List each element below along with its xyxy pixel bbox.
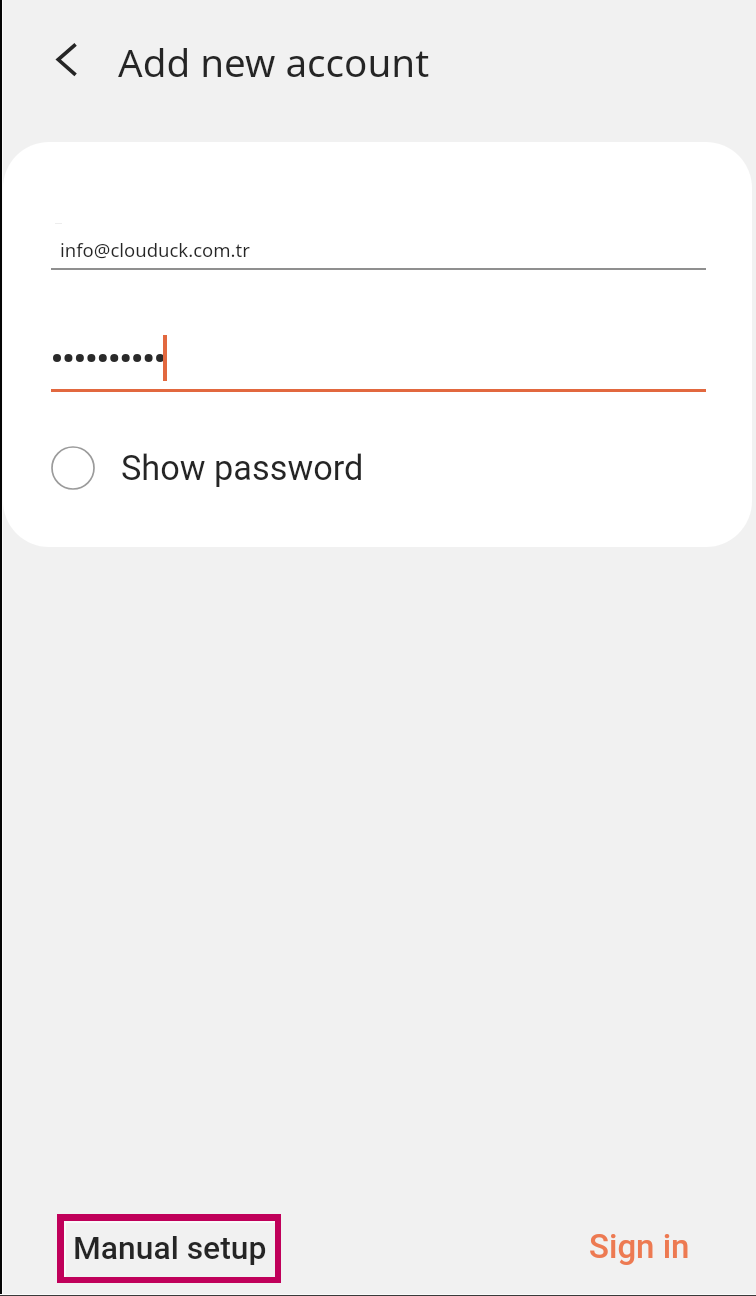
button[interactable]: info@clouduck.com.tr [51,212,706,270]
button[interactable]: Show password [38,433,364,503]
staticText: info@clouduck.com.tr [60,237,250,262]
button[interactable] [51,334,706,392]
staticText: Show password [121,448,364,488]
staticText: Sign in [589,1227,690,1266]
button[interactable]: Sign in [562,1212,717,1280]
button[interactable]: Back [28,21,106,99]
staticText: Manual setup [73,1229,267,1266]
button[interactable]: Manual setup [57,1214,281,1283]
staticText: Add new account [118,36,430,89]
